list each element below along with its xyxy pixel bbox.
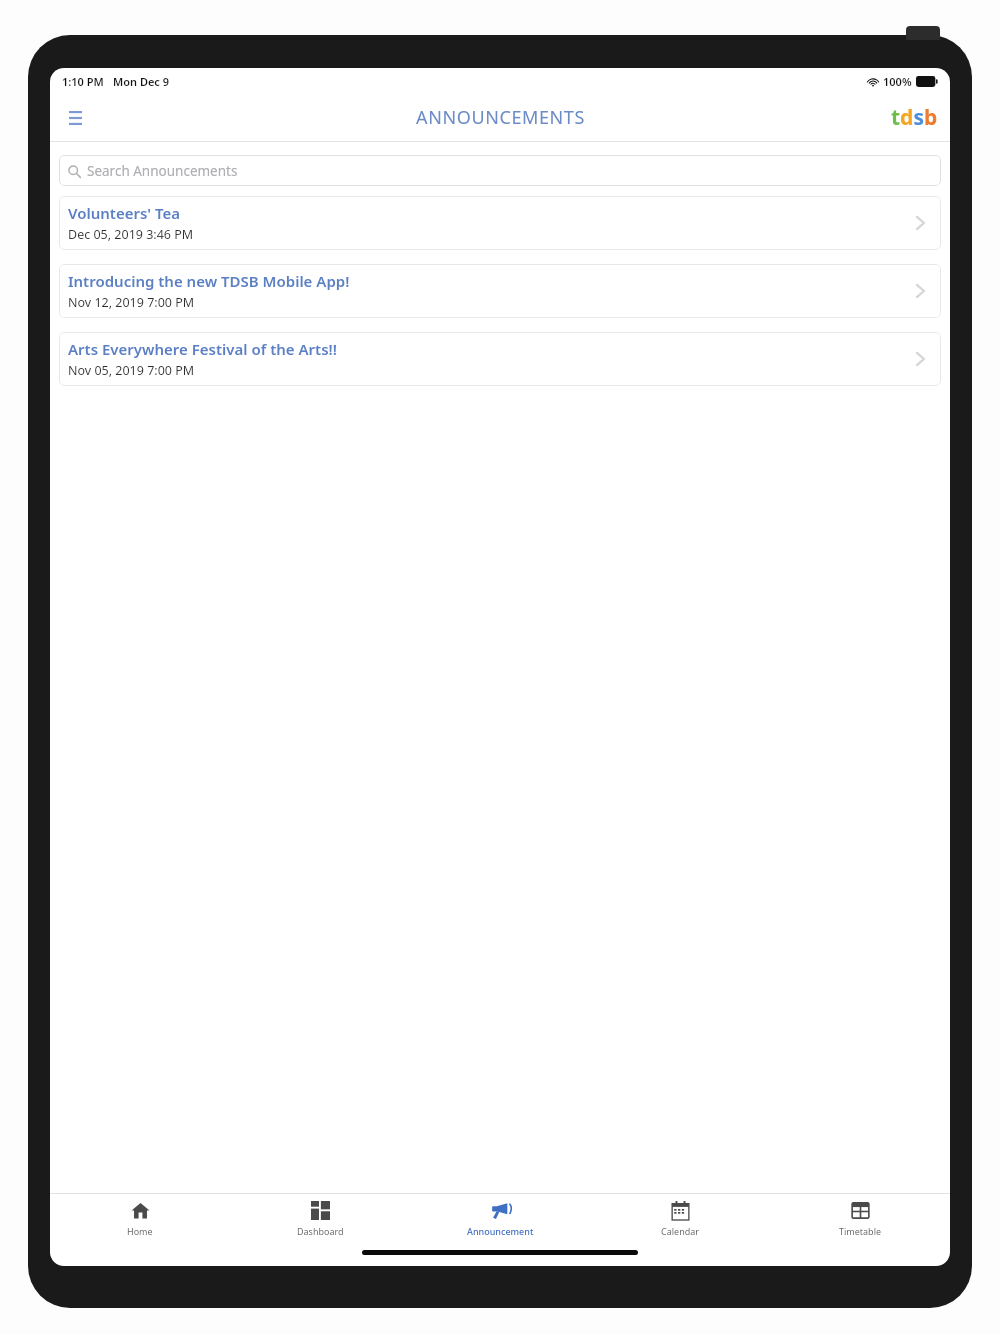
- staticText: tdsb: [891, 103, 938, 132]
- button[interactable]: Introducing the new TDSB Mobile App!: [59, 264, 941, 318]
- staticText: Arts Everywhere Festival of the Arts!!: [68, 339, 337, 359]
- staticText: Nov 05, 2019 7:00 PM: [68, 362, 195, 379]
- staticText: Introducing the new TDSB Mobile App!: [68, 271, 350, 291]
- staticText: Home: [127, 1225, 153, 1237]
- button[interactable]: TDSB logo: [891, 103, 938, 132]
- button[interactable]: Arts Everywhere Festival of the Arts!!: [59, 332, 941, 386]
- staticText: Mon Dec 9: [113, 74, 170, 89]
- staticText: Search Announcements: [87, 162, 238, 180]
- button[interactable]: Dashboard: [230, 1194, 410, 1244]
- button[interactable]: Volunteers' Tea: [59, 196, 941, 250]
- button[interactable]: Menu: [58, 101, 92, 135]
- staticText: Volunteers' Tea: [68, 203, 181, 223]
- staticText: Nov 12, 2019 7:00 PM: [68, 294, 195, 311]
- staticText: Announcement: [467, 1225, 534, 1237]
- staticText: Dec 05, 2019 3:46 PM: [68, 226, 194, 243]
- button[interactable]: Timetable: [770, 1194, 950, 1244]
- staticText: 100%: [883, 74, 912, 89]
- button[interactable]: Home: [50, 1194, 230, 1244]
- staticText: ANNOUNCEMENTS: [416, 105, 585, 130]
- staticText: Timetable: [839, 1225, 882, 1237]
- button[interactable]: Announcement: [410, 1194, 590, 1244]
- button[interactable]: Search Announcements: [59, 155, 941, 186]
- staticText: Dashboard: [297, 1225, 344, 1237]
- staticText: Calendar: [661, 1225, 699, 1237]
- staticText: 1:10 PM: [62, 74, 104, 89]
- button[interactable]: Calendar: [590, 1194, 770, 1244]
